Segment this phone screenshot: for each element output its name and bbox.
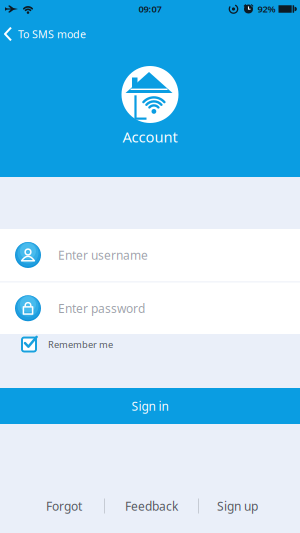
button[interactable]: Sign up <box>199 497 276 515</box>
button[interactable]: Sign in <box>0 388 300 424</box>
button[interactable]: Remember me <box>0 334 300 355</box>
button[interactable]: Back to SMS mode <box>0 22 300 46</box>
button[interactable]: Enter password <box>0 282 300 334</box>
staticText: Account <box>122 127 177 146</box>
staticText: Feedback <box>125 498 178 514</box>
button[interactable]: Forgot <box>24 497 104 515</box>
staticText: Remember me <box>48 338 113 351</box>
button[interactable]: Enter username <box>0 229 300 281</box>
staticText: 09:07 <box>138 3 161 15</box>
staticText: Enter password <box>58 300 145 316</box>
staticText: Sign up <box>217 498 258 514</box>
button[interactable]: Feedback <box>105 497 198 515</box>
staticText: 92% <box>257 3 275 15</box>
staticText: Enter username <box>58 247 148 263</box>
staticText: Sign in <box>131 398 168 414</box>
staticText: To SMS mode <box>18 27 86 41</box>
staticText: Forgot <box>46 498 82 514</box>
